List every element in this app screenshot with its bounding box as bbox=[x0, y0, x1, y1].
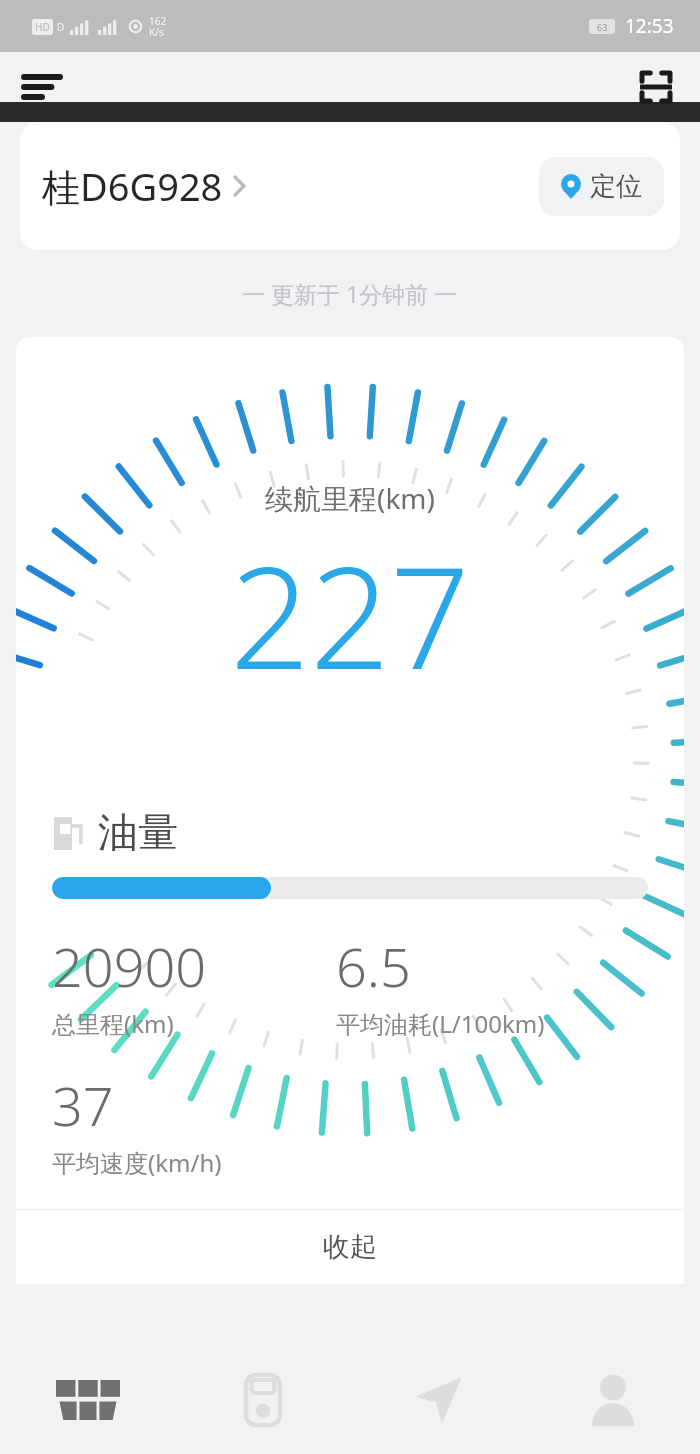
staticText: 12:53 bbox=[625, 13, 674, 39]
staticText: HD bbox=[35, 20, 50, 34]
staticText: 总里程(km) bbox=[52, 1007, 174, 1040]
staticText: 20900 bbox=[52, 929, 207, 1003]
button[interactable]: Menu bbox=[14, 59, 70, 115]
button[interactable]: Control bbox=[175, 1346, 350, 1454]
button[interactable]: 收起 bbox=[16, 1210, 684, 1284]
staticText: 6.5 bbox=[336, 929, 411, 1003]
staticText: 定位 bbox=[590, 170, 642, 203]
button[interactable]: 定位 bbox=[539, 157, 664, 216]
staticText: 收起 bbox=[323, 1230, 377, 1264]
button[interactable]: Navigate bbox=[350, 1346, 525, 1454]
staticText: 37 bbox=[52, 1068, 114, 1142]
staticText: 63 bbox=[597, 21, 608, 33]
staticText: 桂D6G928 bbox=[42, 160, 223, 212]
button[interactable]: Scan bbox=[628, 59, 684, 115]
staticText: 162 K/s bbox=[149, 14, 167, 39]
button[interactable]: 桂D6G928 bbox=[20, 122, 680, 250]
staticText: 平均油耗(L/100km) bbox=[336, 1007, 545, 1040]
button[interactable]: Profile bbox=[525, 1346, 700, 1454]
staticText: 续航里程(km) bbox=[265, 479, 435, 517]
staticText: 227 bbox=[230, 519, 470, 710]
button[interactable]: Vehicle bbox=[0, 1346, 175, 1454]
staticText: D bbox=[57, 20, 65, 34]
staticText: 油量 bbox=[98, 807, 178, 857]
staticText: 平均速度(km/h) bbox=[52, 1146, 222, 1179]
staticText: 一 更新于 1分钟前 一 bbox=[242, 278, 458, 309]
